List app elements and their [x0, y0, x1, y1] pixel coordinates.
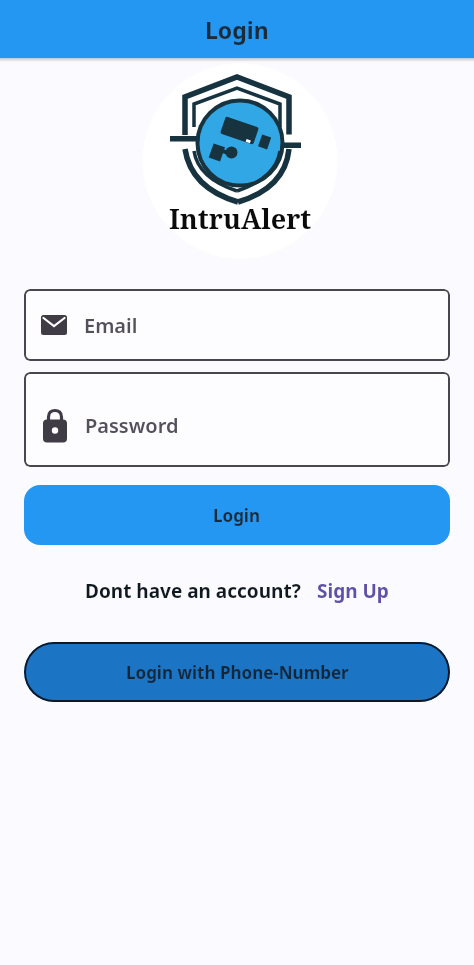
button[interactable]: Login with Phone-Number: [24, 642, 450, 702]
button[interactable]: Login: [24, 485, 450, 545]
button[interactable]: Email: [24, 289, 450, 361]
staticText: Login: [205, 14, 269, 45]
staticText: IntruAlert: [169, 200, 312, 237]
staticText: Email: [84, 312, 138, 339]
staticText: Login with Phone-Number: [126, 661, 349, 684]
staticText: Dont have an account?: [85, 578, 301, 604]
button[interactable]: Password: [24, 372, 450, 467]
staticText: Password: [85, 412, 179, 439]
button[interactable]: Sign Up: [317, 578, 389, 604]
staticText: Login: [213, 504, 261, 527]
